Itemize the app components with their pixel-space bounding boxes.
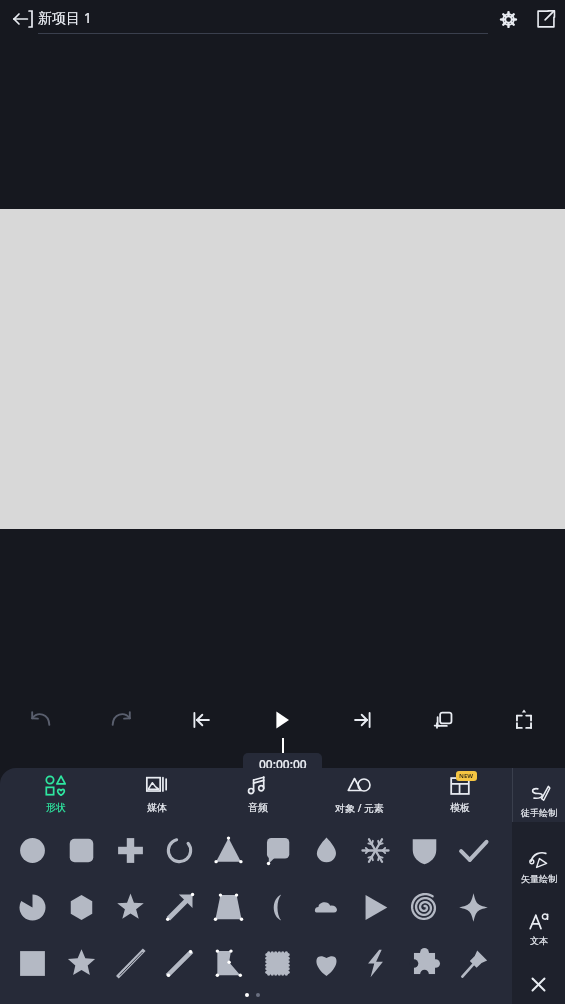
button[interactable]: Lightning: [353, 941, 397, 985]
button[interactable]: Pie: [10, 885, 54, 929]
button[interactable]: Circle: [10, 828, 54, 872]
button[interactable]: Hexagon: [59, 885, 103, 929]
button[interactable]: Snowflake: [353, 828, 397, 872]
button[interactable]: Play triangle: [353, 885, 397, 929]
button[interactable]: 徒手绘制: [512, 774, 565, 826]
button[interactable]: Trapezoid: [206, 885, 250, 929]
button[interactable]: Cloud: [304, 885, 348, 929]
staticText: 媒体: [147, 801, 167, 814]
button[interactable]: Arc: [157, 828, 201, 872]
button[interactable]: Play: [260, 700, 304, 740]
button[interactable]: 文本: [512, 902, 565, 954]
button[interactable]: 形状: [7, 768, 103, 822]
button[interactable]: Rounded square: [59, 828, 103, 872]
staticText: 徒手绘制: [521, 807, 557, 818]
button[interactable]: Crescent: [255, 885, 299, 929]
button[interactable]: Puzzle: [402, 941, 446, 985]
button[interactable]: Check: [451, 828, 495, 872]
button[interactable]: Sparkle: [451, 885, 495, 929]
button[interactable]: Shield: [402, 828, 446, 872]
button[interactable]: Stamp: [255, 941, 299, 985]
button[interactable]: Arrow: [157, 885, 201, 929]
button[interactable]: Back: [4, 0, 42, 38]
staticText: 形状: [46, 801, 66, 814]
button[interactable]: Star: [59, 941, 103, 985]
button[interactable]: 模板: [411, 768, 507, 822]
button[interactable]: Star burst: [108, 885, 152, 929]
button[interactable]: 对象 / 元素: [311, 768, 407, 822]
button[interactable]: Undo: [19, 700, 63, 740]
button[interactable]: 媒体: [108, 768, 204, 822]
button[interactable]: Close: [512, 964, 565, 1004]
staticText: 模板: [450, 801, 470, 814]
button[interactable]: Triangle: [206, 828, 250, 872]
button[interactable]: Line: [157, 941, 201, 985]
button[interactable]: Crop: [502, 700, 546, 740]
button[interactable]: Skip to end: [341, 700, 385, 740]
button[interactable]: Plus: [108, 828, 152, 872]
button[interactable]: Settings: [489, 0, 527, 38]
button[interactable]: Droplet: [304, 828, 348, 872]
staticText: 对象 / 元素: [335, 801, 384, 815]
button[interactable]: Redo: [99, 700, 143, 740]
button[interactable]: Skip to start: [179, 700, 223, 740]
button[interactable]: 音频: [209, 768, 305, 822]
button[interactable]: Spiral: [402, 885, 446, 929]
button[interactable]: Speech bubble: [255, 828, 299, 872]
button[interactable]: 新项目 1: [38, 4, 488, 34]
button[interactable]: Right triangle: [206, 941, 250, 985]
staticText: 00:00:00: [259, 756, 307, 772]
staticText: 文本: [530, 935, 548, 946]
staticText: NEW: [459, 772, 474, 780]
button[interactable]: Square: [10, 941, 54, 985]
staticText: 音频: [248, 801, 268, 814]
button[interactable]: 矢量绘制: [512, 840, 565, 892]
staticText: 新项目 1: [38, 8, 92, 27]
button[interactable]: Heart: [304, 941, 348, 985]
button[interactable]: Pin: [451, 941, 495, 985]
button[interactable]: Duplicate: [421, 700, 465, 740]
button[interactable]: Double line: [108, 941, 152, 985]
button[interactable]: Export: [527, 0, 565, 38]
staticText: 矢量绘制: [521, 873, 557, 884]
